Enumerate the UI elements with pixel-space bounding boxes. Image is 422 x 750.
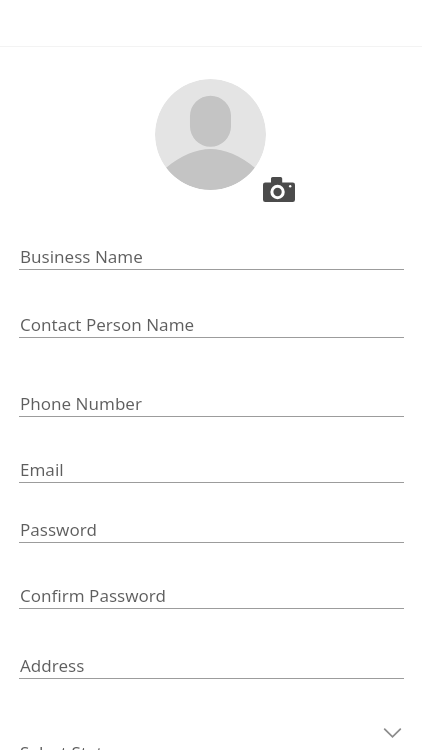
button[interactable]: Contact Person Name [0, 312, 422, 342]
staticText: Contact Person Name [20, 313, 195, 336]
button[interactable]: Address [0, 653, 422, 683]
button[interactable]: Profile photo [155, 79, 266, 190]
staticText: Confirm Password [20, 584, 166, 607]
button[interactable]: Phone Number [0, 391, 422, 421]
button[interactable]: Email [0, 457, 422, 487]
staticText: Phone Number [20, 392, 142, 415]
staticText: Address [20, 654, 85, 677]
button[interactable]: Change profile photo [261, 174, 297, 204]
button[interactable]: Password [0, 517, 422, 547]
button[interactable]: Select State [0, 722, 422, 750]
button[interactable]: Business Name [0, 244, 422, 274]
staticText: Business Name [20, 245, 143, 268]
staticText: Password [20, 518, 97, 541]
staticText: Email [20, 458, 64, 481]
staticText: Select State [20, 741, 113, 750]
button[interactable]: Confirm Password [0, 583, 422, 613]
